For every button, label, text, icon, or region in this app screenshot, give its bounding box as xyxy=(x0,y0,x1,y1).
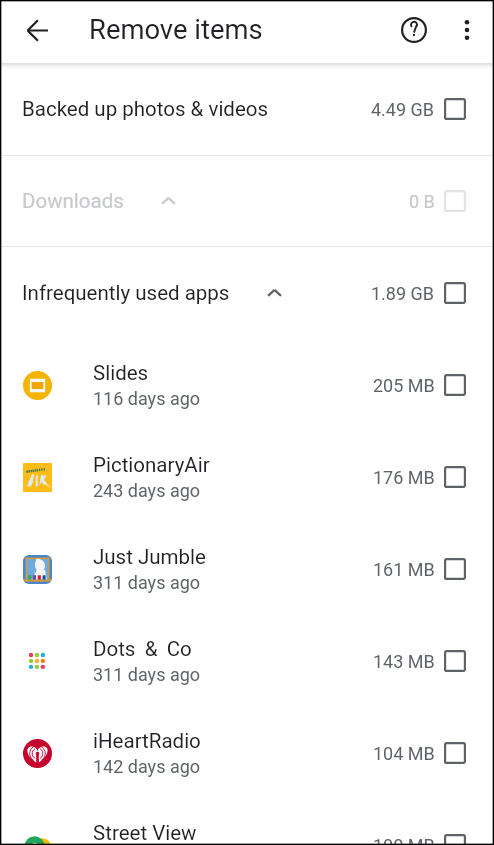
staticText: Slides xyxy=(93,361,149,385)
staticText: 176 MB xyxy=(373,467,435,488)
staticText: Remove items xyxy=(89,14,263,46)
button[interactable]: iHeartRadio xyxy=(0,707,494,799)
staticText: Street View xyxy=(93,821,197,845)
staticText: 0 B xyxy=(409,191,435,212)
button[interactable]: Dots & Co xyxy=(0,615,494,707)
button[interactable]: Slides xyxy=(0,339,494,431)
button[interactable]: Street View xyxy=(0,799,494,845)
button[interactable]: Infrequently used apps xyxy=(0,247,494,339)
staticText: PictionaryAir xyxy=(93,453,210,477)
staticText: Just Jumble xyxy=(93,545,206,569)
staticText: 4.49 GB xyxy=(371,99,435,120)
button[interactable]: Downloads xyxy=(0,156,494,246)
staticText: iHeartRadio xyxy=(93,729,201,753)
staticText: Infrequently used apps xyxy=(22,281,230,305)
button[interactable]: Just Jumble xyxy=(0,523,494,615)
staticText: 142 days ago xyxy=(93,756,201,777)
staticText: 161 MB xyxy=(373,559,435,580)
button[interactable]: Back xyxy=(13,6,61,54)
staticText: 243 days ago xyxy=(93,480,201,501)
staticText: 143 MB xyxy=(373,651,435,672)
staticText: 116 days ago xyxy=(93,388,201,409)
button[interactable]: More options xyxy=(443,6,491,54)
staticText: Dots & Co xyxy=(93,637,192,661)
button[interactable]: Backed up photos & videos xyxy=(0,63,494,155)
staticText: Downloads xyxy=(22,189,124,213)
staticText: 104 MB xyxy=(373,743,435,764)
staticText: 311 days ago xyxy=(93,572,201,593)
staticText: 100 MB xyxy=(373,835,435,845)
button[interactable]: PictionaryAir xyxy=(0,431,494,523)
staticText: 205 MB xyxy=(373,375,435,396)
staticText: 311 days ago xyxy=(93,664,201,685)
staticText: 1.89 GB xyxy=(371,283,435,304)
button[interactable]: Help xyxy=(390,6,438,54)
staticText: Backed up photos & videos xyxy=(22,97,269,121)
